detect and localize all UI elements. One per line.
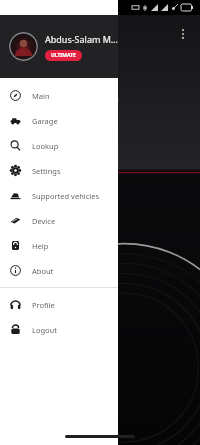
staticText: Logout — [32, 325, 57, 335]
button[interactable]: More options — [172, 23, 194, 45]
button[interactable]: Garage — [0, 108, 118, 133]
staticText: ULTIMATE — [51, 52, 76, 59]
staticText: Device — [32, 216, 56, 226]
button[interactable]: Abdus-Salam Mift… — [0, 15, 118, 78]
button[interactable]: Help — [0, 233, 118, 258]
staticText: Settings — [32, 166, 61, 176]
button[interactable]: About — [0, 258, 118, 283]
staticText: Lookup — [32, 141, 59, 151]
staticText: Garage — [32, 116, 58, 126]
button[interactable]: Main — [0, 83, 118, 108]
staticText: Profile — [32, 300, 55, 310]
staticText: Main — [32, 91, 50, 101]
staticText: About — [32, 266, 54, 276]
staticText: Help — [32, 241, 49, 251]
staticText: Abdus-Salam Mift… — [45, 33, 118, 45]
button[interactable]: Logout — [0, 317, 118, 342]
button[interactable]: Device — [0, 208, 118, 233]
button[interactable]: Settings — [0, 158, 118, 183]
button[interactable]: Lookup — [0, 133, 118, 158]
button[interactable]: Supported vehicles — [0, 183, 118, 208]
staticText: Supported vehicles — [32, 191, 100, 201]
button[interactable]: Profile — [0, 292, 118, 317]
